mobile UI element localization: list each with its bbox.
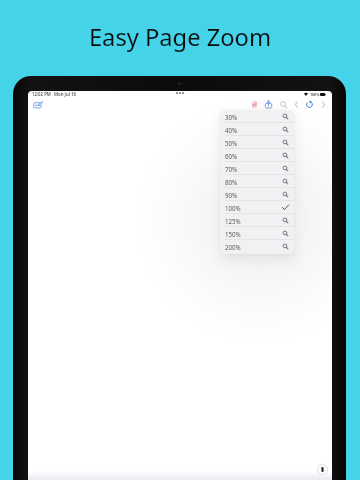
button[interactable]: 100% <box>220 201 294 214</box>
button[interactable]: Page settings <box>316 463 328 475</box>
staticText: 100% <box>310 92 320 97</box>
staticText: 100% <box>225 204 241 212</box>
button[interactable]: 125% <box>220 214 294 227</box>
button[interactable]: 50% <box>220 136 294 149</box>
staticText: 80% <box>225 178 238 186</box>
button[interactable]: Search <box>277 98 289 110</box>
staticText: 200% <box>225 243 241 251</box>
button[interactable]: 30% <box>220 110 294 123</box>
button[interactable]: Back <box>290 98 302 110</box>
button[interactable]: 80% <box>220 175 294 188</box>
staticText: 70% <box>225 165 238 173</box>
button[interactable]: Forward <box>317 98 329 110</box>
button[interactable]: Reader view <box>248 98 260 110</box>
staticText: 125% <box>225 217 241 225</box>
button[interactable]: Tab overview <box>32 99 44 111</box>
staticText: 40% <box>225 126 238 134</box>
button[interactable]: 200% <box>220 240 294 253</box>
staticText: 12:02 PM Mon Jul 16 <box>32 91 76 97</box>
button[interactable]: 60% <box>220 149 294 162</box>
button[interactable]: Reload <box>303 98 315 110</box>
staticText: 60% <box>225 152 238 160</box>
button[interactable]: 150% <box>220 227 294 240</box>
button[interactable]: 40% <box>220 123 294 136</box>
staticText: Easy Page Zoom <box>0 21 360 53</box>
button[interactable]: 90% <box>220 188 294 201</box>
staticText: 50% <box>225 139 238 147</box>
staticText: 30% <box>225 113 238 121</box>
button[interactable]: Share <box>262 98 274 110</box>
staticText: 150% <box>225 230 241 238</box>
staticText: 90% <box>225 191 238 199</box>
button[interactable]: 70% <box>220 162 294 175</box>
